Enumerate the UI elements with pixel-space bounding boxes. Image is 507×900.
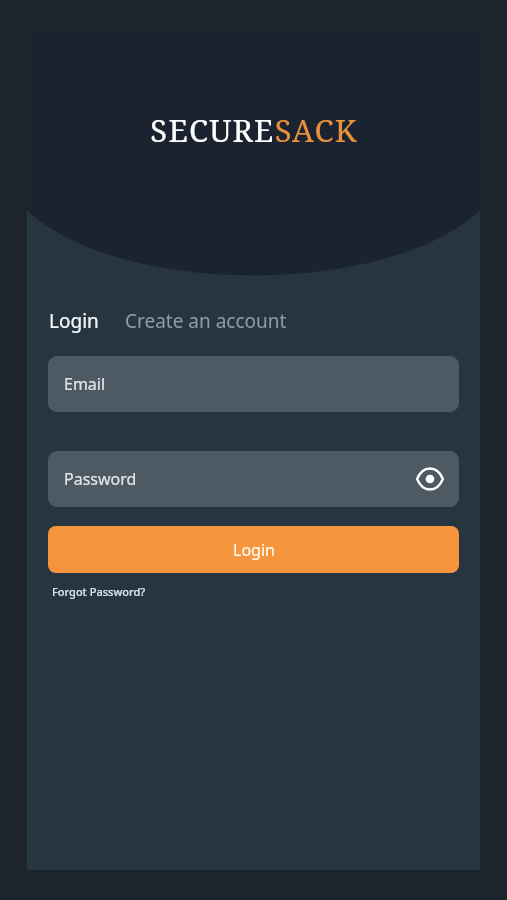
- button[interactable]: Login: [48, 526, 459, 573]
- staticText: Create an account: [125, 308, 287, 334]
- staticText: Email: [64, 373, 106, 395]
- staticText: SECURESACK: [150, 109, 358, 151]
- staticText: Password: [64, 468, 137, 490]
- button[interactable]: Login: [48, 304, 100, 338]
- button[interactable]: Show password: [413, 462, 447, 496]
- button[interactable]: Create an account: [124, 304, 288, 338]
- staticText: Login: [233, 539, 275, 561]
- staticText: Login: [49, 308, 99, 334]
- button[interactable]: Forgot Password?: [48, 581, 150, 602]
- button[interactable]: Email: [48, 356, 459, 412]
- button[interactable]: Password: [48, 451, 459, 507]
- staticText: Forgot Password?: [52, 584, 146, 599]
